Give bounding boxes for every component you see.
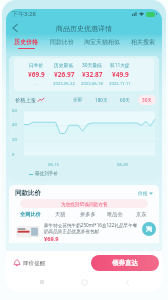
staticText: 淘宝天猫相似 bbox=[84, 38, 120, 46]
staticText: ¥49.9 bbox=[112, 70, 129, 79]
staticText: 30天最低 bbox=[82, 62, 102, 69]
staticText: 20 bbox=[12, 137, 17, 143]
staticText: 下午3:28 bbox=[12, 10, 36, 18]
staticText: 拼多多 bbox=[80, 211, 96, 218]
staticText: 180天 bbox=[95, 97, 108, 103]
staticText: 领券直达 bbox=[112, 259, 138, 267]
staticText: 30天 bbox=[142, 97, 152, 103]
button[interactable]: Home bbox=[77, 275, 91, 289]
button[interactable]: 领券直达 bbox=[91, 255, 159, 271]
staticText: 历史最低 bbox=[54, 62, 74, 68]
button[interactable]: 180天 bbox=[91, 95, 112, 105]
staticText: - bbox=[35, 81, 37, 87]
button[interactable]: 全部 bbox=[69, 95, 87, 105]
button[interactable]: 天猫 bbox=[47, 211, 74, 218]
staticText: 06-29 bbox=[117, 162, 128, 168]
button[interactable]: Back bbox=[8, 21, 22, 35]
staticText: 日常价 bbox=[29, 62, 44, 68]
button[interactable]: 历史价格 bbox=[8, 37, 44, 51]
staticText: 价格上涨 bbox=[15, 97, 36, 104]
staticText: 06-15 bbox=[48, 162, 59, 168]
staticText: 60 bbox=[12, 108, 17, 114]
staticText: 2023-06-18 bbox=[81, 81, 103, 87]
staticText: ¥32.87 bbox=[82, 70, 103, 79]
button[interactable]: Recents bbox=[35, 275, 49, 289]
staticText: 全部 bbox=[73, 97, 83, 103]
button[interactable]: 唯品会 bbox=[101, 211, 128, 218]
button[interactable]: 60天 bbox=[116, 95, 134, 105]
staticText: 0 bbox=[12, 152, 15, 158]
button[interactable]: 拼多多 bbox=[74, 211, 101, 218]
button[interactable]: 价格 bbox=[136, 188, 155, 198]
staticText: ¥69.9 bbox=[28, 70, 45, 79]
staticText: 最优到手价 bbox=[35, 171, 58, 177]
staticText: 为您找到65条同款在售 bbox=[61, 201, 108, 207]
staticText: 唯品会 bbox=[107, 211, 123, 218]
staticText: 京东 bbox=[136, 211, 147, 218]
staticText: 40 bbox=[12, 122, 17, 128]
staticText: 天猫 bbox=[55, 211, 66, 218]
staticText: 2023-05-22 bbox=[53, 81, 75, 87]
staticText: 全网比价 bbox=[20, 211, 41, 218]
staticText: 淘 bbox=[146, 225, 152, 233]
staticText: 双11大促 bbox=[110, 62, 130, 69]
staticText: 相关搜索 bbox=[131, 38, 155, 46]
staticText: 商品历史优惠详情 bbox=[56, 24, 112, 33]
staticText: 2022-11-11 bbox=[109, 81, 131, 87]
staticText: 价格 bbox=[138, 190, 148, 196]
staticText: ¥26.97 bbox=[54, 70, 75, 79]
button[interactable]: 降价提醒 bbox=[11, 257, 48, 269]
button[interactable]: 蒙牛特仑苏纯牛奶250ml*16盒122礼品早午餐奶高品质正品优惠多省包邮 bbox=[9, 222, 159, 243]
button[interactable]: 30天 bbox=[138, 95, 156, 105]
staticText: ¥69.9 bbox=[44, 235, 59, 243]
button[interactable]: 相关搜索 bbox=[125, 37, 160, 51]
staticText: 60天 bbox=[120, 97, 130, 103]
button[interactable]: 淘宝天猫相似 bbox=[79, 37, 125, 51]
staticText: 同款比价 bbox=[50, 38, 74, 46]
staticText: 降价提醒 bbox=[23, 260, 46, 267]
staticText: 蒙牛特仑苏纯牛奶250ml*16盒122礼品早午餐奶高品质正品优惠多省包邮 bbox=[44, 222, 140, 234]
staticText: 同款比价 bbox=[15, 189, 41, 197]
staticText: 历史价格 bbox=[14, 38, 38, 46]
button[interactable]: 全网比价 bbox=[13, 211, 47, 218]
button[interactable]: 同款比价 bbox=[44, 37, 79, 51]
button[interactable]: 京东 bbox=[128, 211, 155, 218]
